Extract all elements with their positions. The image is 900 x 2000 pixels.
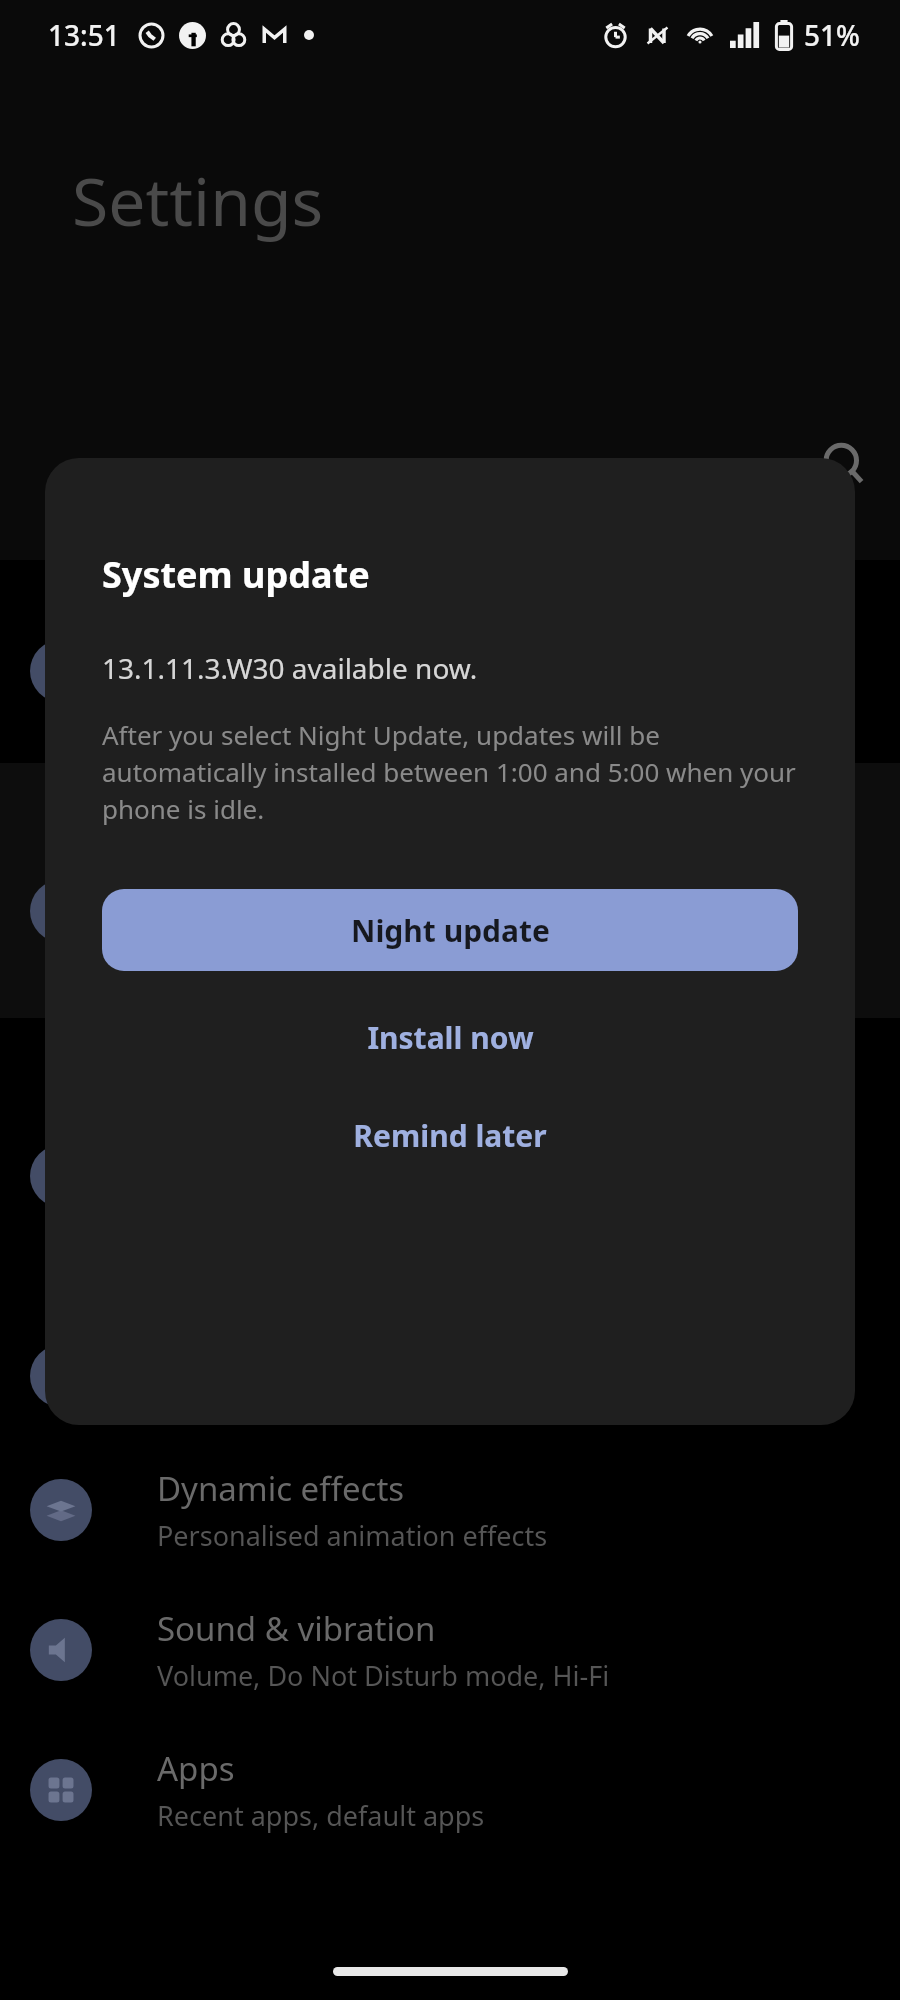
staticText: Sound & vibration <box>157 1606 436 1651</box>
staticText: Remind later <box>353 1115 547 1156</box>
button[interactable]: Sound & vibration <box>0 1580 900 1720</box>
staticText: Night update <box>351 910 550 951</box>
button[interactable]: Apps <box>0 1720 900 1860</box>
staticText: Recent apps, default apps <box>157 1797 485 1834</box>
staticText: 13:51 <box>48 16 120 54</box>
staticText: Apps <box>157 1746 235 1791</box>
staticText: After you select Night Update, updates w… <box>102 717 805 827</box>
button[interactable]: Install now <box>45 997 855 1077</box>
staticText: 13.1.11.3.W30 available now. <box>102 649 478 687</box>
staticText: System update <box>102 550 370 599</box>
staticText: Settings <box>72 155 324 245</box>
staticText: Install now <box>367 1017 534 1058</box>
staticText: Volume, Do Not Disturb mode, Hi-Fi <box>157 1657 610 1694</box>
button[interactable]: Night update <box>102 889 798 971</box>
button[interactable]: Dynamic effects <box>0 1440 900 1580</box>
button[interactable]: Remind later <box>45 1095 855 1175</box>
staticText: Personalised animation effects <box>157 1517 548 1554</box>
button[interactable]: Search <box>800 420 890 510</box>
staticText: 51% <box>804 16 860 54</box>
staticText: Dynamic effects <box>157 1466 405 1511</box>
